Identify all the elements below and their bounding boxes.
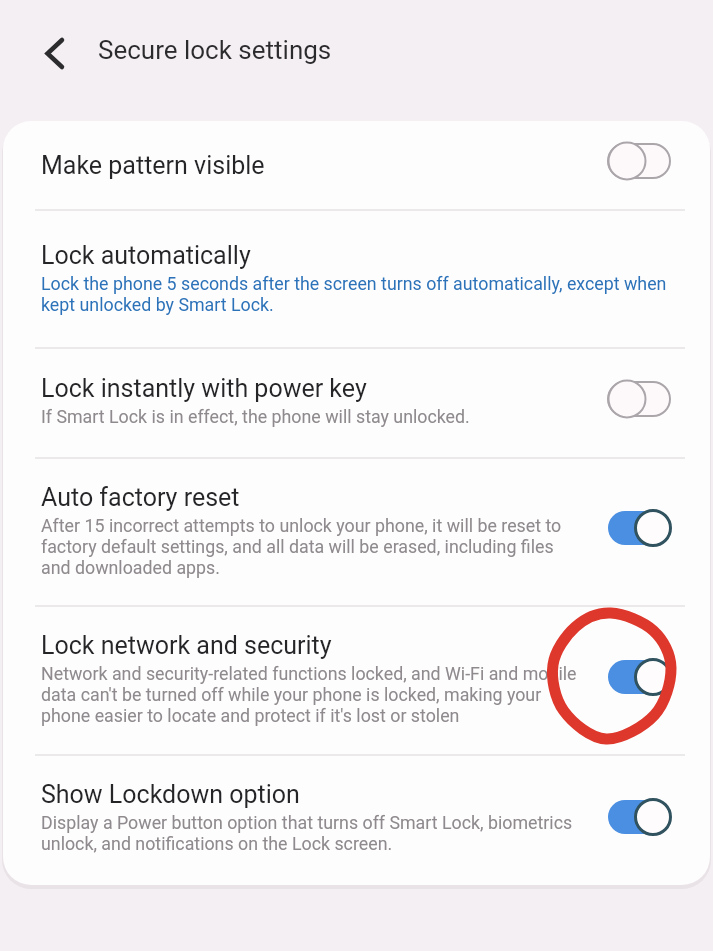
staticText: Show Lockdown option: [41, 780, 300, 809]
staticText: kept unlocked by Smart Lock.: [41, 294, 274, 315]
staticText: After 15 incorrect attempts to unlock yo…: [41, 515, 562, 536]
button[interactable]: Make pattern visible: [3, 121, 710, 209]
staticText: Lock instantly with power key: [41, 374, 367, 403]
staticText: data can't be turned off while your phon…: [41, 684, 542, 705]
staticText: If Smart Lock is in effect, the phone wi…: [41, 406, 470, 427]
staticText: Auto factory reset: [41, 483, 240, 512]
button[interactable]: Lock network and security: [3, 607, 710, 754]
staticText: factory default settings, and all data w…: [41, 536, 554, 557]
staticText: phone easier to locate and protect if it…: [41, 705, 460, 726]
staticText: Display a Power button option that turns…: [41, 812, 573, 833]
staticText: Lock the phone 5 seconds after the scree…: [41, 273, 667, 294]
button[interactable]: Lock automatically: [3, 211, 710, 347]
staticText: unlock, and notifications on the Lock sc…: [41, 833, 393, 854]
staticText: Lock network and security: [41, 631, 332, 660]
staticText: Secure lock settings: [98, 35, 332, 65]
button[interactable]: Lock instantly with power key: [3, 349, 710, 457]
staticText: and downloaded apps.: [41, 557, 220, 578]
staticText: Lock automatically: [41, 241, 251, 270]
staticText: Network and security-related functions l…: [41, 663, 577, 684]
staticText: Make pattern visible: [41, 151, 265, 180]
button[interactable]: Auto factory reset: [3, 459, 710, 605]
button[interactable]: Show Lockdown option: [3, 756, 710, 885]
button[interactable]: [30, 29, 78, 77]
